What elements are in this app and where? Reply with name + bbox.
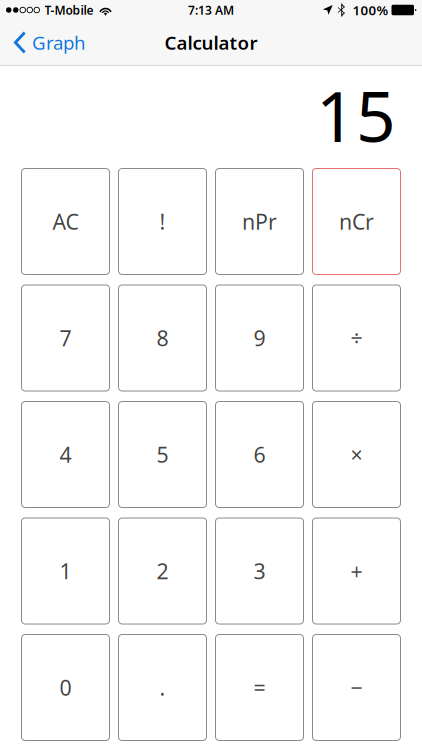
button[interactable]: 4 xyxy=(21,401,110,508)
staticText: ÷ xyxy=(350,324,362,352)
staticText: 1 xyxy=(59,557,71,585)
staticText: T-Mobile xyxy=(44,2,93,18)
staticText: 100% xyxy=(352,1,388,19)
button[interactable]: 3 xyxy=(215,517,304,624)
staticText: . xyxy=(159,673,165,702)
staticText: = xyxy=(253,673,265,702)
button[interactable]: 6 xyxy=(215,401,304,508)
button[interactable]: AC xyxy=(21,168,110,275)
staticText: nCr xyxy=(339,207,374,236)
button[interactable]: + xyxy=(312,517,401,624)
button[interactable]: ! xyxy=(118,168,207,275)
button[interactable]: ÷ xyxy=(312,284,401,391)
staticText: Graph xyxy=(32,30,86,55)
staticText: 0 xyxy=(59,673,71,702)
staticText: 9 xyxy=(253,324,265,352)
staticText: AC xyxy=(52,207,78,236)
button[interactable]: 8 xyxy=(118,284,207,391)
staticText: ! xyxy=(159,207,165,236)
button[interactable]: Graph xyxy=(0,20,96,64)
button[interactable]: nPr xyxy=(215,168,304,275)
button[interactable]: 2 xyxy=(118,517,207,624)
staticText: − xyxy=(350,673,362,702)
button[interactable]: . xyxy=(118,634,207,741)
staticText: 3 xyxy=(253,557,265,585)
button[interactable]: nCr xyxy=(312,168,401,275)
button[interactable]: 9 xyxy=(215,284,304,391)
staticText: 5 xyxy=(156,440,168,469)
staticText: × xyxy=(350,440,362,469)
button[interactable]: × xyxy=(312,401,401,508)
button[interactable]: 0 xyxy=(21,634,110,741)
staticText: 8 xyxy=(156,324,168,352)
staticText: 4 xyxy=(59,440,71,469)
staticText: 7:13 AM xyxy=(188,2,234,18)
staticText: 6 xyxy=(253,440,265,469)
staticText: + xyxy=(350,557,362,585)
staticText: 15 xyxy=(316,69,396,161)
button[interactable]: 5 xyxy=(118,401,207,508)
staticText: Calculator xyxy=(164,30,257,55)
staticText: 7 xyxy=(59,324,71,352)
button[interactable]: = xyxy=(215,634,304,741)
button[interactable]: 1 xyxy=(21,517,110,624)
staticText: 2 xyxy=(156,557,168,585)
button[interactable]: − xyxy=(312,634,401,741)
button[interactable]: 7 xyxy=(21,284,110,391)
staticText: nPr xyxy=(242,207,277,236)
